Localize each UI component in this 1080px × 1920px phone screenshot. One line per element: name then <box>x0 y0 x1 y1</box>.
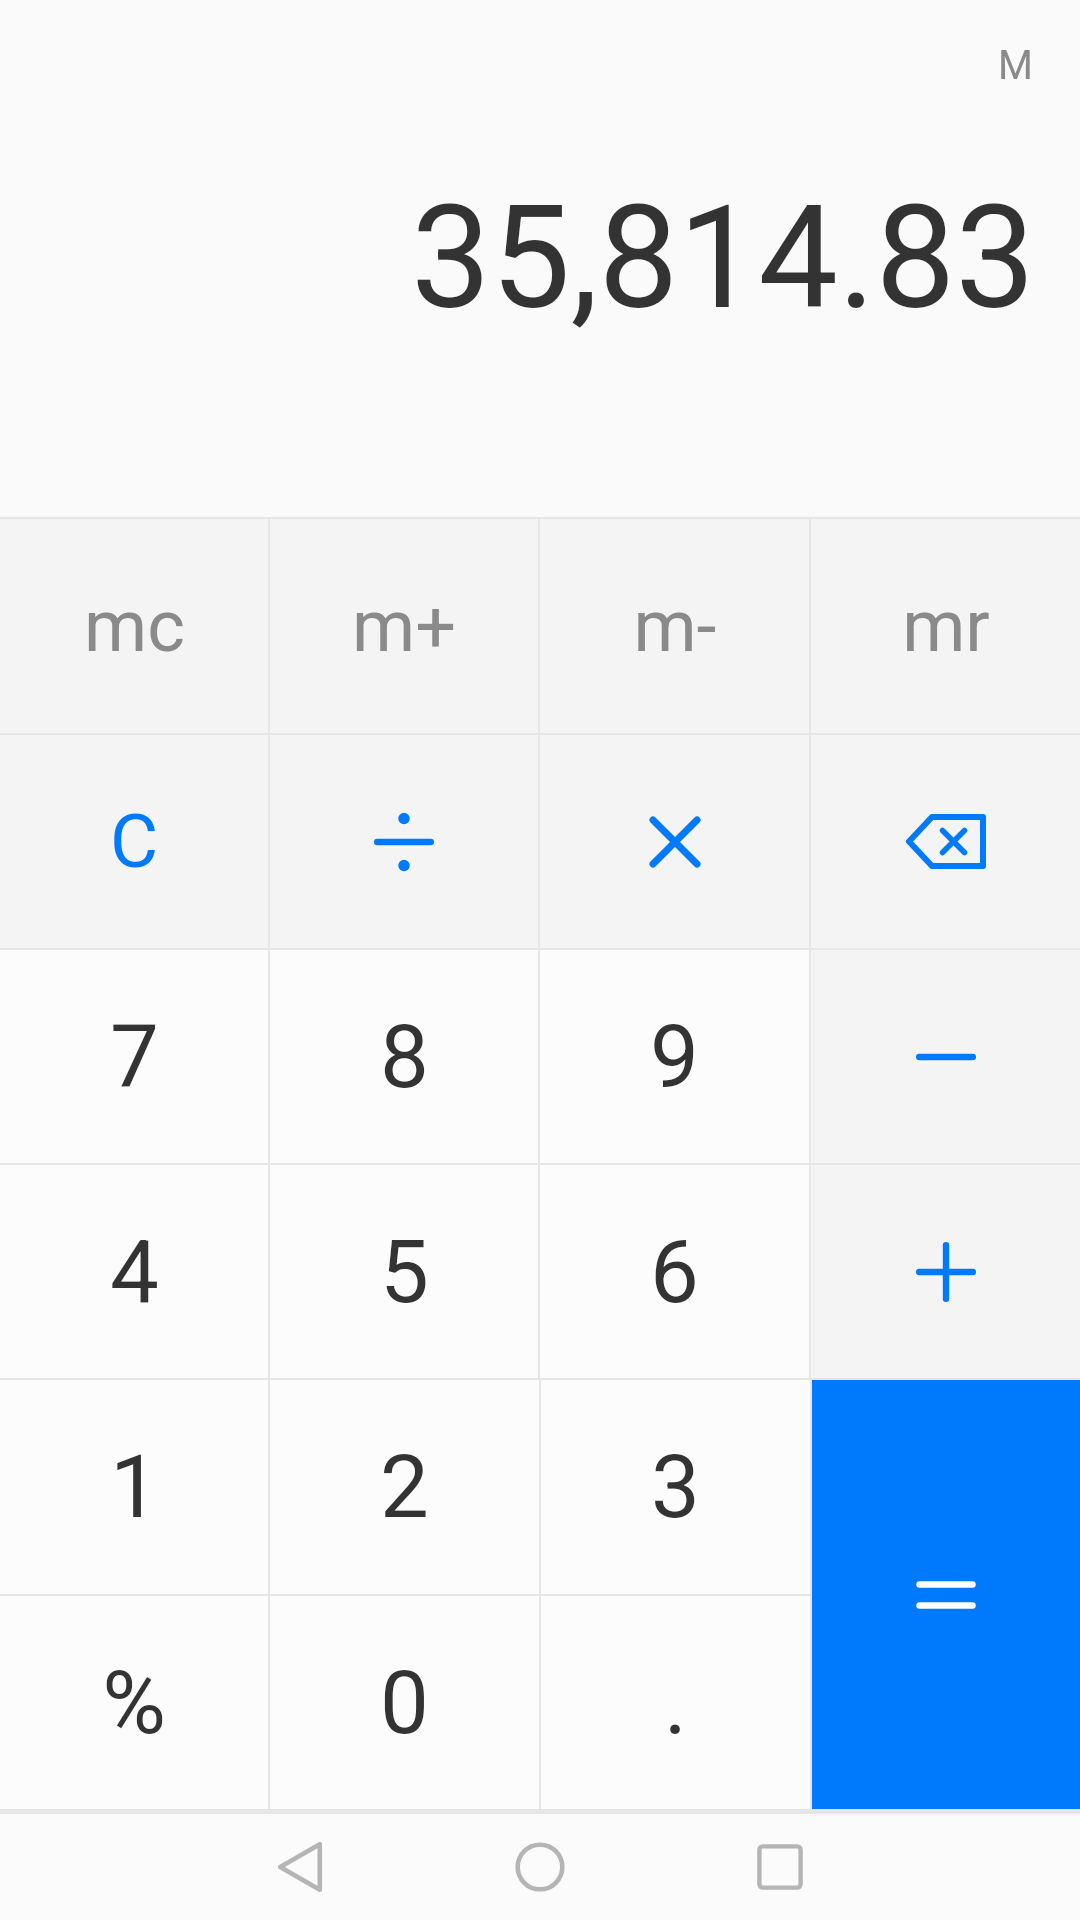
button[interactable]: Backspace <box>811 735 1080 948</box>
staticText: 2 <box>380 1436 429 1538</box>
button[interactable]: 3 <box>541 1380 810 1594</box>
button[interactable]: m- <box>540 519 809 733</box>
staticText: C <box>110 798 159 885</box>
staticText: m+ <box>352 584 456 668</box>
staticText: 7 <box>110 1006 159 1108</box>
button[interactable]: % <box>0 1596 268 1809</box>
button[interactable]: 4 <box>0 1165 268 1378</box>
button[interactable]: Clear <box>0 735 268 948</box>
button[interactable]: Plus <box>811 1165 1080 1378</box>
staticText: 3 <box>651 1436 700 1538</box>
button[interactable]: 9 <box>540 950 809 1163</box>
staticText: m- <box>633 584 717 668</box>
button[interactable]: mr <box>811 519 1080 733</box>
button[interactable]: Recents <box>720 1814 840 1920</box>
button[interactable]: m+ <box>270 519 538 733</box>
staticText: 8 <box>380 1006 429 1108</box>
staticText: 4 <box>110 1221 159 1323</box>
staticText: 5 <box>380 1221 429 1323</box>
staticText: mc <box>84 584 185 668</box>
button[interactable]: 7 <box>0 950 268 1163</box>
staticText: 0 <box>380 1652 429 1754</box>
button[interactable]: Home <box>480 1814 600 1920</box>
staticText: 35,814.83 <box>411 175 1036 341</box>
button[interactable]: 5 <box>270 1165 538 1378</box>
button[interactable]: Minus <box>811 950 1080 1163</box>
button[interactable]: mc <box>0 519 268 733</box>
button[interactable]: Back <box>240 1814 360 1920</box>
staticText: % <box>102 1652 166 1754</box>
button[interactable]: 2 <box>270 1380 539 1594</box>
button[interactable]: Divide <box>270 735 538 948</box>
staticText: 1 <box>110 1436 159 1538</box>
button[interactable]: Multiply <box>540 735 809 948</box>
staticText: mr <box>902 584 990 668</box>
button[interactable]: . <box>541 1596 810 1809</box>
staticText: 6 <box>650 1221 699 1323</box>
button[interactable]: 6 <box>540 1165 809 1378</box>
button[interactable]: 8 <box>270 950 538 1163</box>
button[interactable]: 0 <box>270 1596 539 1809</box>
button[interactable]: 1 <box>0 1380 268 1594</box>
staticText: . <box>664 1652 687 1754</box>
staticText: 9 <box>650 1006 699 1108</box>
button[interactable]: Equals <box>812 1380 1080 1809</box>
staticText: M <box>998 42 1033 89</box>
